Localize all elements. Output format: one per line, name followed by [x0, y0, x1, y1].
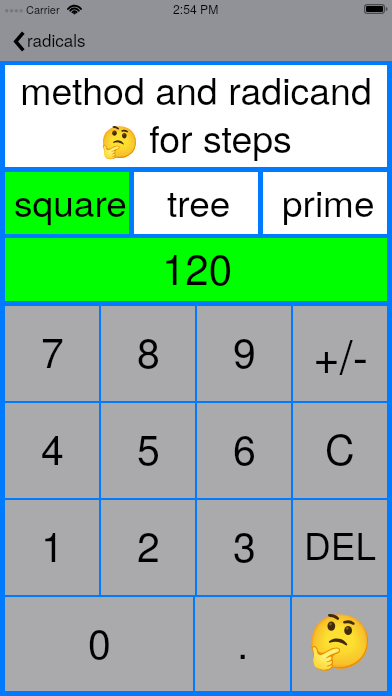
- button[interactable]: tree: [134, 172, 258, 234]
- button[interactable]: Back: [9, 24, 98, 54]
- button[interactable]: 5: [101, 403, 195, 498]
- button[interactable]: 9: [197, 306, 291, 401]
- button[interactable]: 4: [5, 403, 99, 498]
- staticText: 8: [137, 321, 160, 380]
- staticText: 2: [137, 515, 160, 574]
- staticText: C: [325, 418, 355, 477]
- other: Back: [14, 31, 25, 52]
- button[interactable]: .: [195, 597, 290, 691]
- button[interactable]: +/-: [293, 306, 387, 401]
- button[interactable]: 7: [5, 306, 99, 401]
- button[interactable]: square: [5, 172, 129, 234]
- button[interactable]: 8: [101, 306, 195, 401]
- staticText: +/-: [313, 321, 368, 387]
- staticText: method and radicand 🤔 for steps: [5, 62, 387, 164]
- staticText: 4: [41, 418, 64, 477]
- staticText: DEL: [304, 518, 376, 571]
- button[interactable]: C: [293, 403, 387, 498]
- staticText: 3: [233, 515, 256, 574]
- staticText: 120: [162, 237, 233, 297]
- staticText: 5: [137, 418, 160, 477]
- staticText: Carrier: [26, 1, 60, 17]
- staticText: 2:54 PM: [173, 0, 219, 17]
- staticText: 6: [233, 418, 256, 477]
- staticText: 9: [233, 321, 256, 380]
- button[interactable]: 🤔: [292, 597, 387, 691]
- button[interactable]: method and radicand 🤔 for steps: [5, 65, 387, 167]
- staticText: .: [237, 612, 249, 671]
- staticText: square: [14, 175, 127, 228]
- button[interactable]: 2: [101, 500, 195, 595]
- staticText: 🤔: [307, 611, 373, 673]
- button[interactable]: DEL: [293, 500, 387, 595]
- staticText: radicals: [27, 27, 86, 51]
- button[interactable]: 6: [197, 403, 291, 498]
- staticText: prime: [282, 175, 375, 228]
- button[interactable]: 3: [197, 500, 291, 595]
- button[interactable]: 120: [5, 238, 387, 301]
- staticText: 0: [88, 612, 111, 671]
- staticText: 1: [41, 515, 64, 574]
- staticText: tree: [167, 175, 231, 228]
- staticText: 7: [41, 321, 64, 380]
- button[interactable]: 1: [5, 500, 99, 595]
- button[interactable]: prime: [263, 172, 387, 234]
- button[interactable]: 0: [5, 597, 193, 691]
